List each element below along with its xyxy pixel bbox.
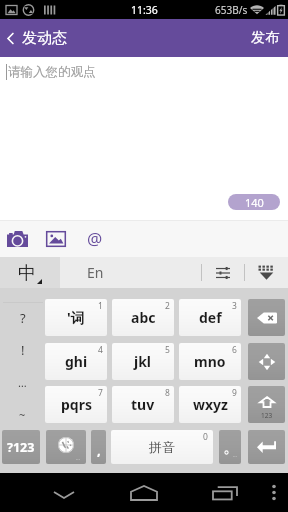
staticText: def xyxy=(199,308,222,327)
button[interactable]: ghi xyxy=(45,343,107,380)
button[interactable]: abc xyxy=(112,299,174,336)
button[interactable]: Gallery xyxy=(38,220,73,257)
staticText: ! xyxy=(21,341,25,359)
button[interactable]: Camera xyxy=(0,220,35,257)
button[interactable]: Shift xyxy=(248,386,285,423)
button[interactable]: , xyxy=(91,430,106,464)
button[interactable]: wxyz xyxy=(179,386,241,423)
button[interactable]: jkl xyxy=(112,343,174,380)
button[interactable]: mno xyxy=(179,343,241,380)
staticText: 请输入您的观点 xyxy=(8,64,96,80)
button[interactable]: 140 xyxy=(228,194,280,210)
button[interactable]: … xyxy=(0,366,45,398)
button[interactable]: Keyboard settings xyxy=(202,257,244,288)
button[interactable]: 拼音 xyxy=(111,430,213,464)
staticText: ?123 xyxy=(7,439,35,456)
button[interactable]: ? xyxy=(0,302,45,334)
button[interactable]: Recent apps xyxy=(201,473,249,512)
button[interactable]: ! xyxy=(0,334,45,366)
staticText: '词 xyxy=(67,308,85,327)
staticText: 2 xyxy=(165,300,170,312)
staticText: @ xyxy=(87,227,103,250)
staticText: ... xyxy=(233,452,238,459)
staticText: 8 xyxy=(165,387,170,399)
button[interactable]: ... xyxy=(219,430,241,464)
staticText: En xyxy=(87,263,104,282)
button[interactable]: ~ xyxy=(0,398,45,430)
staticText: 11:36 xyxy=(131,3,158,17)
staticText: 653B/s xyxy=(215,3,248,17)
button[interactable]: pqrs xyxy=(45,386,107,423)
staticText: 拼音 xyxy=(149,439,175,455)
button[interactable]: def xyxy=(179,299,241,336)
button[interactable]: '词 xyxy=(45,299,107,336)
button[interactable]: En xyxy=(60,257,130,288)
staticText: 123 xyxy=(261,411,273,420)
staticText: 9 xyxy=(232,387,237,399)
staticText: 发布 xyxy=(251,29,279,47)
staticText: 0 xyxy=(203,431,208,443)
staticText: mno xyxy=(194,352,226,371)
button[interactable]: 发布 xyxy=(240,19,288,57)
staticText: ~ xyxy=(19,407,26,422)
staticText: 发动态 xyxy=(22,29,67,48)
staticText: 3 xyxy=(232,300,237,312)
staticText: 中 xyxy=(18,262,36,285)
staticText: 4 xyxy=(98,344,103,356)
staticText: pqrs xyxy=(61,395,92,414)
button[interactable]: Back xyxy=(40,473,88,512)
button[interactable]: 发动态 xyxy=(0,19,75,57)
button[interactable]: More options xyxy=(260,473,288,512)
button[interactable]: Hide keyboard xyxy=(245,257,288,288)
button[interactable]: Home xyxy=(120,473,168,512)
button[interactable]: 中 xyxy=(0,257,60,288)
staticText: … xyxy=(18,375,27,390)
staticText: 140 xyxy=(245,195,264,210)
staticText: wxyz xyxy=(193,395,228,414)
button[interactable]: Backspace xyxy=(248,299,285,336)
staticText: , xyxy=(97,441,101,459)
staticText: 5 xyxy=(165,344,170,356)
button[interactable]: Mention xyxy=(77,220,112,257)
staticText: ghi xyxy=(65,352,88,371)
button[interactable]: Move cursor xyxy=(248,343,285,380)
staticText: ... xyxy=(76,455,81,462)
button[interactable]: Change language xyxy=(46,430,86,464)
staticText: jkl xyxy=(134,352,152,371)
staticText: 6 xyxy=(232,344,237,356)
staticText: 7 xyxy=(98,387,103,399)
staticText: ? xyxy=(20,309,26,327)
staticText: tuv xyxy=(131,395,155,414)
staticText: abc xyxy=(131,308,156,327)
button[interactable]: tuv xyxy=(112,386,174,423)
staticText: 1 xyxy=(98,300,103,312)
button[interactable]: ?123 xyxy=(2,430,40,464)
button[interactable]: Enter xyxy=(248,430,285,464)
